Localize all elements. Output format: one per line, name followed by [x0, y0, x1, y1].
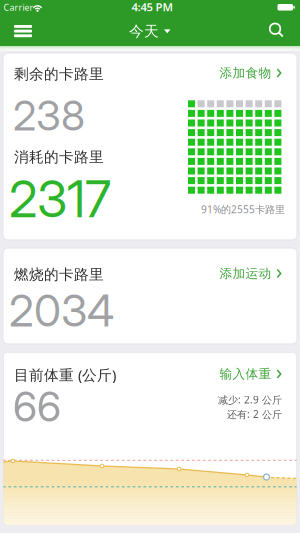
button[interactable]: 添加运动 — [219, 266, 281, 281]
staticText: 今天 — [129, 22, 159, 40]
button[interactable]: 输入体重 — [219, 366, 281, 382]
staticText: 目前体重 (公斤) — [14, 365, 116, 384]
button[interactable]: 添加食物 — [219, 65, 281, 81]
button[interactable]: Menu — [14, 25, 32, 37]
button[interactable]: Search — [270, 23, 283, 37]
staticText: 消耗的卡路里 — [14, 148, 104, 166]
staticText: 91%的2555卡路里 — [201, 202, 285, 216]
staticText: Carrier — [3, 1, 33, 13]
staticText: 燃烧的卡路里 — [14, 265, 104, 283]
staticText: 2034 — [9, 284, 114, 336]
staticText: 添加食物 — [219, 65, 271, 81]
staticText: 还有: 2 公斤 — [227, 407, 282, 421]
staticText: 66 — [13, 382, 61, 431]
staticText: 输入体重 — [219, 366, 271, 382]
staticText: 减少: 2.9 公斤 — [218, 393, 282, 406]
staticText: 238 — [13, 91, 85, 140]
staticText: 添加运动 — [219, 266, 271, 281]
staticText: 剩余的卡路里 — [14, 65, 104, 83]
button[interactable]: 今天 — [129, 22, 171, 40]
staticText: 2317 — [9, 169, 111, 229]
staticText: 4:45 PM — [132, 0, 174, 15]
